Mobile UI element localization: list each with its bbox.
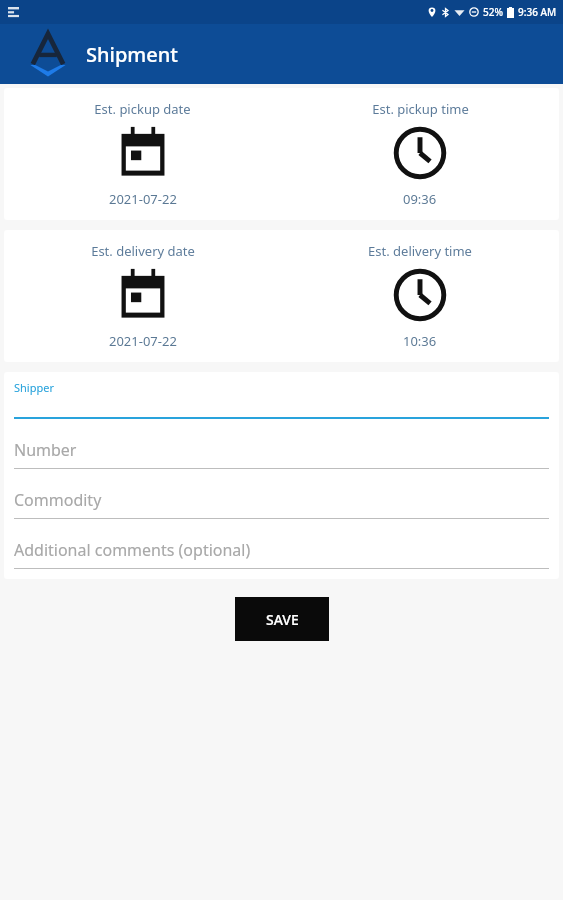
other: Pick time — [391, 124, 449, 182]
button[interactable]: Est. pickup date — [4, 98, 281, 210]
staticText: Shipper — [14, 380, 54, 395]
button[interactable]: Shipper — [14, 380, 549, 419]
staticText: 09:36 — [403, 190, 437, 208]
staticText: SAVE — [266, 610, 299, 629]
staticText: 52% — [483, 5, 503, 19]
staticText: Shipment — [86, 41, 178, 68]
button[interactable]: Commodity — [14, 489, 549, 519]
button[interactable]: Number — [14, 439, 549, 469]
button[interactable]: Est. delivery time — [281, 240, 559, 352]
staticText: Number — [14, 439, 77, 461]
button[interactable]: Est. pickup time — [281, 98, 559, 210]
other: Pick time — [391, 266, 449, 324]
staticText: 9:36 AM — [518, 5, 557, 19]
other: Pick date — [114, 124, 172, 182]
button[interactable]: Additional comments (optional) — [14, 539, 549, 569]
staticText: Est. pickup date — [94, 100, 191, 118]
button[interactable]: Est. delivery date — [4, 240, 281, 352]
other: Pick date — [114, 266, 172, 324]
staticText: Est. delivery time — [368, 242, 472, 260]
staticText: Est. delivery date — [91, 242, 195, 260]
staticText: Est. pickup time — [372, 100, 469, 118]
staticText: 2021-07-22 — [109, 332, 177, 350]
staticText: Additional comments (optional) — [14, 539, 251, 561]
staticText: 2021-07-22 — [109, 190, 177, 208]
staticText: Commodity — [14, 489, 102, 511]
button[interactable]: SAVE — [235, 597, 329, 641]
staticText: 10:36 — [403, 332, 437, 350]
